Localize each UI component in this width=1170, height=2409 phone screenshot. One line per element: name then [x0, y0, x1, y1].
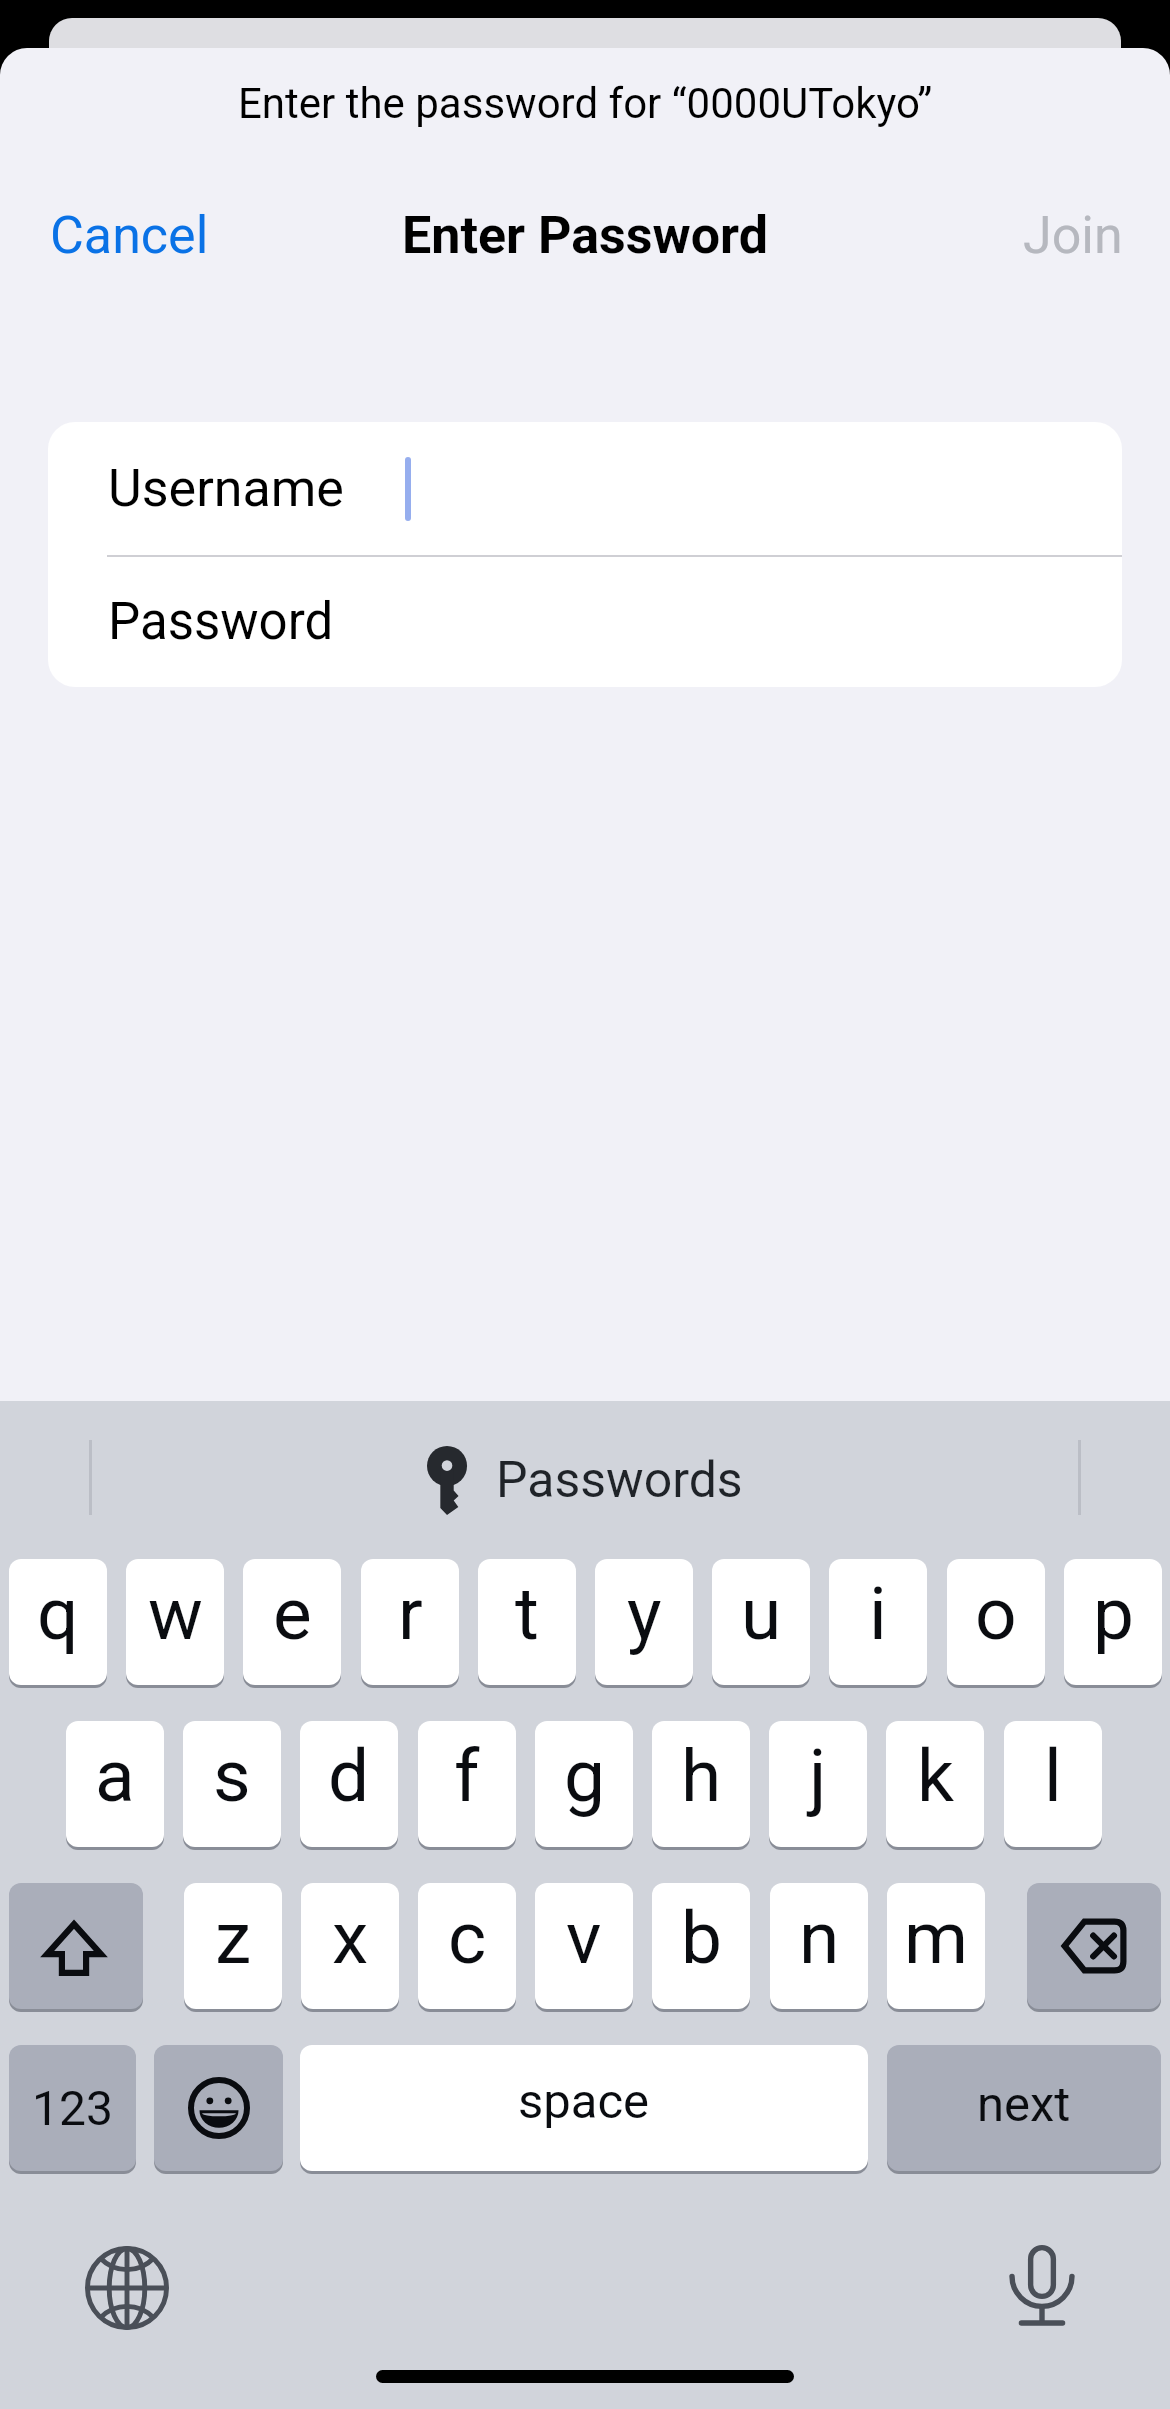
staticText: v — [566, 1895, 602, 1981]
button[interactable]: Next keyboard — [85, 2246, 169, 2330]
staticText: q — [37, 1571, 79, 1657]
staticText: k — [917, 1733, 954, 1819]
staticText: j — [809, 1733, 827, 1819]
staticText: space — [518, 2073, 650, 2130]
staticText: w — [148, 1571, 203, 1657]
button[interactable]: Emoji — [154, 2045, 283, 2171]
button[interactable]: x — [301, 1883, 399, 2009]
staticText: Enter Password — [402, 205, 768, 266]
button[interactable]: Shift — [9, 1883, 143, 2009]
button[interactable]: p — [1064, 1559, 1162, 1685]
staticText: u — [741, 1571, 782, 1657]
button[interactable]: n — [770, 1883, 868, 2009]
staticText: 123 — [32, 2080, 113, 2136]
button[interactable]: 123 — [9, 2045, 136, 2171]
button[interactable]: i — [829, 1559, 927, 1685]
button[interactable]: t — [478, 1559, 576, 1685]
button[interactable]: l — [1004, 1721, 1102, 1847]
staticText: m — [904, 1895, 969, 1981]
button[interactable]: s — [183, 1721, 281, 1847]
staticText: r — [398, 1571, 423, 1657]
staticText: a — [95, 1733, 135, 1819]
staticText: l — [1044, 1733, 1062, 1819]
button[interactable]: Passwords — [427, 1446, 743, 1515]
button[interactable]: w — [126, 1559, 224, 1685]
staticText: c — [448, 1895, 487, 1981]
staticText: Join — [1023, 205, 1123, 266]
button[interactable]: g — [535, 1721, 633, 1847]
button[interactable]: Join — [999, 191, 1170, 280]
staticText: o — [975, 1571, 1017, 1657]
button[interactable]: a — [66, 1721, 164, 1847]
button[interactable]: z — [184, 1883, 282, 2009]
button[interactable]: m — [887, 1883, 985, 2009]
button[interactable]: u — [712, 1559, 810, 1685]
staticText: f — [454, 1733, 480, 1819]
button[interactable]: space — [300, 2045, 868, 2171]
button[interactable]: c — [418, 1883, 516, 2009]
button[interactable]: d — [300, 1721, 398, 1847]
staticText: p — [1093, 1571, 1134, 1657]
staticText: Cancel — [50, 205, 209, 266]
staticText: e — [273, 1571, 312, 1657]
button[interactable]: e — [243, 1559, 341, 1685]
button[interactable]: k — [886, 1721, 984, 1847]
button[interactable]: y — [595, 1559, 693, 1685]
button[interactable]: Username — [48, 422, 1122, 555]
button[interactable]: o — [947, 1559, 1045, 1685]
button[interactable]: Cancel — [0, 191, 233, 280]
staticText: Password — [108, 592, 334, 652]
staticText: h — [681, 1733, 722, 1819]
button[interactable]: j — [769, 1721, 867, 1847]
button[interactable]: h — [652, 1721, 750, 1847]
button[interactable]: Backspace — [1027, 1883, 1161, 2009]
staticText: g — [564, 1733, 605, 1819]
staticText: s — [213, 1733, 251, 1819]
button[interactable]: next — [887, 2045, 1161, 2171]
button[interactable]: v — [535, 1883, 633, 2009]
staticText: i — [869, 1571, 887, 1657]
staticText: next — [977, 2076, 1071, 2133]
staticText: b — [681, 1895, 722, 1981]
button[interactable]: q — [9, 1559, 107, 1685]
button[interactable]: Password — [48, 557, 1122, 687]
staticText: t — [515, 1571, 539, 1657]
button[interactable]: r — [361, 1559, 459, 1685]
staticText: Passwords — [496, 1451, 743, 1510]
button[interactable]: b — [652, 1883, 750, 2009]
staticText: y — [627, 1571, 662, 1657]
staticText: Username — [108, 458, 344, 519]
staticText: z — [215, 1895, 252, 1981]
staticText: n — [799, 1895, 840, 1981]
staticText: x — [332, 1895, 369, 1981]
staticText: d — [328, 1733, 370, 1819]
button[interactable]: Dictation — [1000, 2242, 1084, 2326]
staticText: Enter the password for “0000UTokyo” — [238, 79, 933, 128]
button[interactable]: f — [418, 1721, 516, 1847]
